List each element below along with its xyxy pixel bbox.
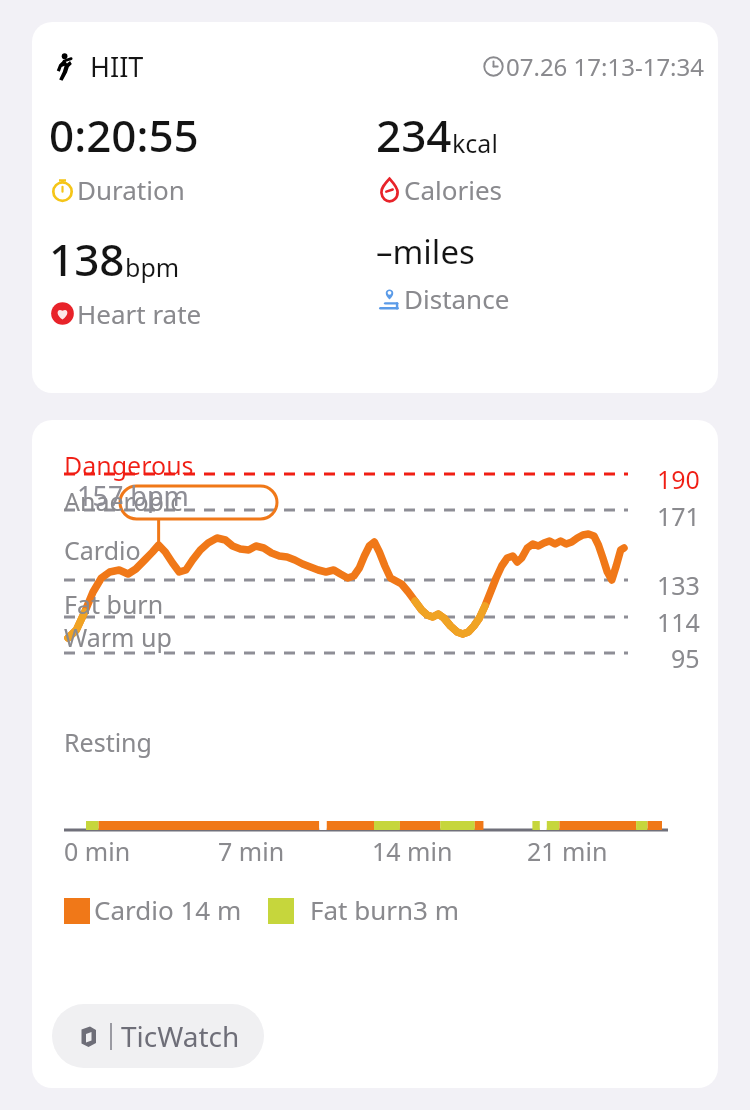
staticText: Fat burn3 m: [310, 892, 460, 927]
staticText: 7 min: [218, 834, 372, 868]
other: HIIT workout: [49, 52, 79, 82]
staticText: 190: [657, 462, 700, 496]
staticText: Heart rate: [77, 296, 202, 331]
button[interactable]: TicWatch: [52, 1004, 264, 1068]
staticText: Calories: [404, 172, 503, 207]
staticText: 07.26 17:13-17:34: [506, 50, 704, 83]
staticText: Distance: [404, 281, 510, 316]
staticText: 138: [49, 229, 125, 289]
staticText: 0:20:55: [49, 105, 199, 165]
staticText: Warm up: [64, 620, 172, 654]
staticText: Cardio 14 m: [94, 892, 242, 927]
staticText: HIIT: [90, 48, 144, 85]
staticText: 157 bpm: [77, 477, 189, 514]
staticText: 234: [376, 105, 452, 165]
button[interactable]: –miles: [376, 229, 704, 316]
button[interactable]: 234: [376, 105, 704, 207]
staticText: 114: [657, 605, 700, 639]
staticText: Dangerous: [64, 448, 194, 482]
staticText: TicWatch: [121, 1017, 240, 1055]
staticText: 14 min: [372, 834, 527, 868]
staticText: 21 min: [527, 834, 682, 868]
staticText: Anaerobic: [64, 484, 183, 518]
staticText: Cardio: [64, 533, 141, 567]
staticText: bpm: [125, 250, 180, 284]
staticText: Duration: [77, 172, 185, 207]
staticText: Fat burn: [64, 587, 164, 621]
staticText: Resting: [64, 725, 152, 759]
button[interactable]: 138: [49, 229, 376, 331]
staticText: –miles: [376, 229, 475, 274]
button[interactable]: HIIT workout: [32, 22, 718, 393]
staticText: kcal: [452, 126, 498, 160]
staticText: 0 min: [64, 834, 218, 868]
staticText: 171: [657, 499, 700, 533]
button[interactable]: 0:20:55: [49, 105, 376, 207]
staticText: 133: [657, 568, 700, 602]
staticText: 95: [671, 641, 700, 675]
